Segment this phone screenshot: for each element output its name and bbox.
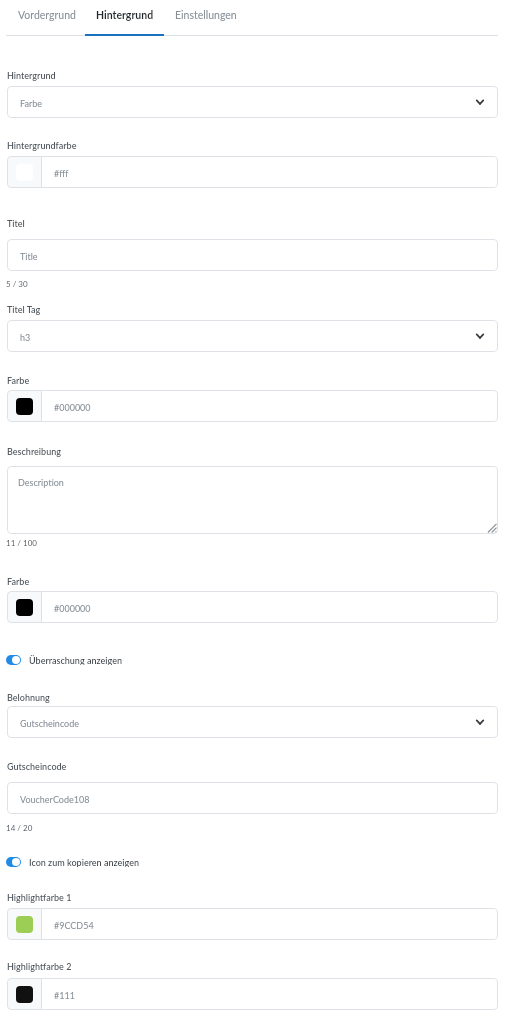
- staticText: #9CCD54: [54, 920, 94, 931]
- staticText: h3: [20, 332, 31, 343]
- staticText: Gutscheincode: [20, 718, 80, 729]
- button[interactable]: #000000: [7, 591, 498, 623]
- staticText: Titel: [7, 218, 25, 229]
- staticText: 14 / 20: [6, 823, 33, 833]
- other: Auswahl öffnen: [474, 96, 486, 108]
- staticText: Vordergrund: [18, 9, 76, 22]
- button[interactable]: Hintergrund: [85, 0, 165, 31]
- staticText: Einstellungen: [175, 9, 237, 22]
- button[interactable]: #000000: [7, 390, 498, 422]
- staticText: Highlightfarbe 1: [7, 892, 72, 903]
- other: Auswahl öffnen: [474, 716, 486, 728]
- staticText: #000000: [54, 402, 91, 413]
- staticText: Description: [18, 477, 64, 488]
- button[interactable]: Einstellungen: [165, 0, 246, 31]
- staticText: #000000: [54, 603, 91, 614]
- staticText: Gutscheincode: [7, 761, 67, 772]
- staticText: Beschreibung: [7, 446, 61, 457]
- staticText: Überraschung anzeigen: [29, 655, 122, 665]
- button[interactable]: VoucherCode108: [7, 782, 498, 814]
- staticText: 5 / 30: [6, 279, 28, 289]
- button[interactable]: #fff: [7, 156, 498, 188]
- staticText: Titel Tag: [7, 304, 41, 315]
- staticText: Farbe: [20, 98, 42, 109]
- button[interactable]: Gutscheincode: [7, 706, 498, 738]
- button[interactable]: Title: [7, 239, 498, 271]
- staticText: #fff: [54, 168, 69, 179]
- staticText: #111: [54, 990, 75, 1001]
- staticText: Hintergrundfarbe: [7, 140, 77, 151]
- button[interactable]: #111: [7, 978, 498, 1010]
- staticText: Farbe: [7, 375, 30, 386]
- button[interactable]: Farbe: [7, 86, 498, 118]
- staticText: Belohnung: [7, 692, 50, 703]
- button[interactable]: h3: [7, 320, 498, 352]
- button[interactable]: Description: [7, 466, 498, 534]
- staticText: 11 / 100: [6, 538, 37, 548]
- button[interactable]: Überraschung anzeigen: [0, 655, 509, 665]
- staticText: Farbe: [7, 576, 30, 587]
- button[interactable]: Vordergrund: [7, 0, 86, 31]
- other: Auswahl öffnen: [474, 330, 486, 342]
- staticText: Hintergrund: [96, 9, 154, 22]
- staticText: Highlightfarbe 2: [7, 961, 72, 972]
- staticText: Icon zum kopieren anzeigen: [29, 857, 139, 867]
- staticText: Hintergrund: [7, 70, 56, 81]
- staticText: Title: [20, 251, 38, 262]
- button[interactable]: #9CCD54: [7, 908, 498, 940]
- staticText: VoucherCode108: [20, 794, 90, 805]
- button[interactable]: Icon zum kopieren anzeigen: [0, 857, 509, 867]
